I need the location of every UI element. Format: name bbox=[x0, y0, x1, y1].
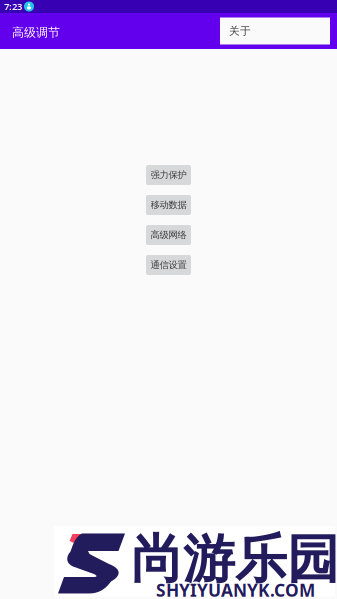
staticText: 强力保护 bbox=[150, 169, 186, 181]
staticText: 关于 bbox=[229, 24, 251, 37]
staticText: 高级网络 bbox=[150, 229, 186, 241]
button[interactable]: 高级网络 bbox=[146, 225, 191, 245]
button[interactable]: 强力保护 bbox=[146, 165, 191, 185]
button[interactable]: 关于 bbox=[220, 17, 330, 44]
staticText: 移动数据 bbox=[150, 199, 186, 211]
staticText: 通信设置 bbox=[150, 259, 186, 271]
staticText: 尚游乐园 bbox=[131, 527, 337, 591]
staticText: 7:23 bbox=[4, 0, 22, 13]
staticText: SHYIYUANYK.COM bbox=[156, 578, 315, 599]
button[interactable]: 移动数据 bbox=[146, 195, 191, 215]
button[interactable]: 通信设置 bbox=[146, 255, 191, 275]
staticText: 高级调节 bbox=[12, 25, 60, 40]
